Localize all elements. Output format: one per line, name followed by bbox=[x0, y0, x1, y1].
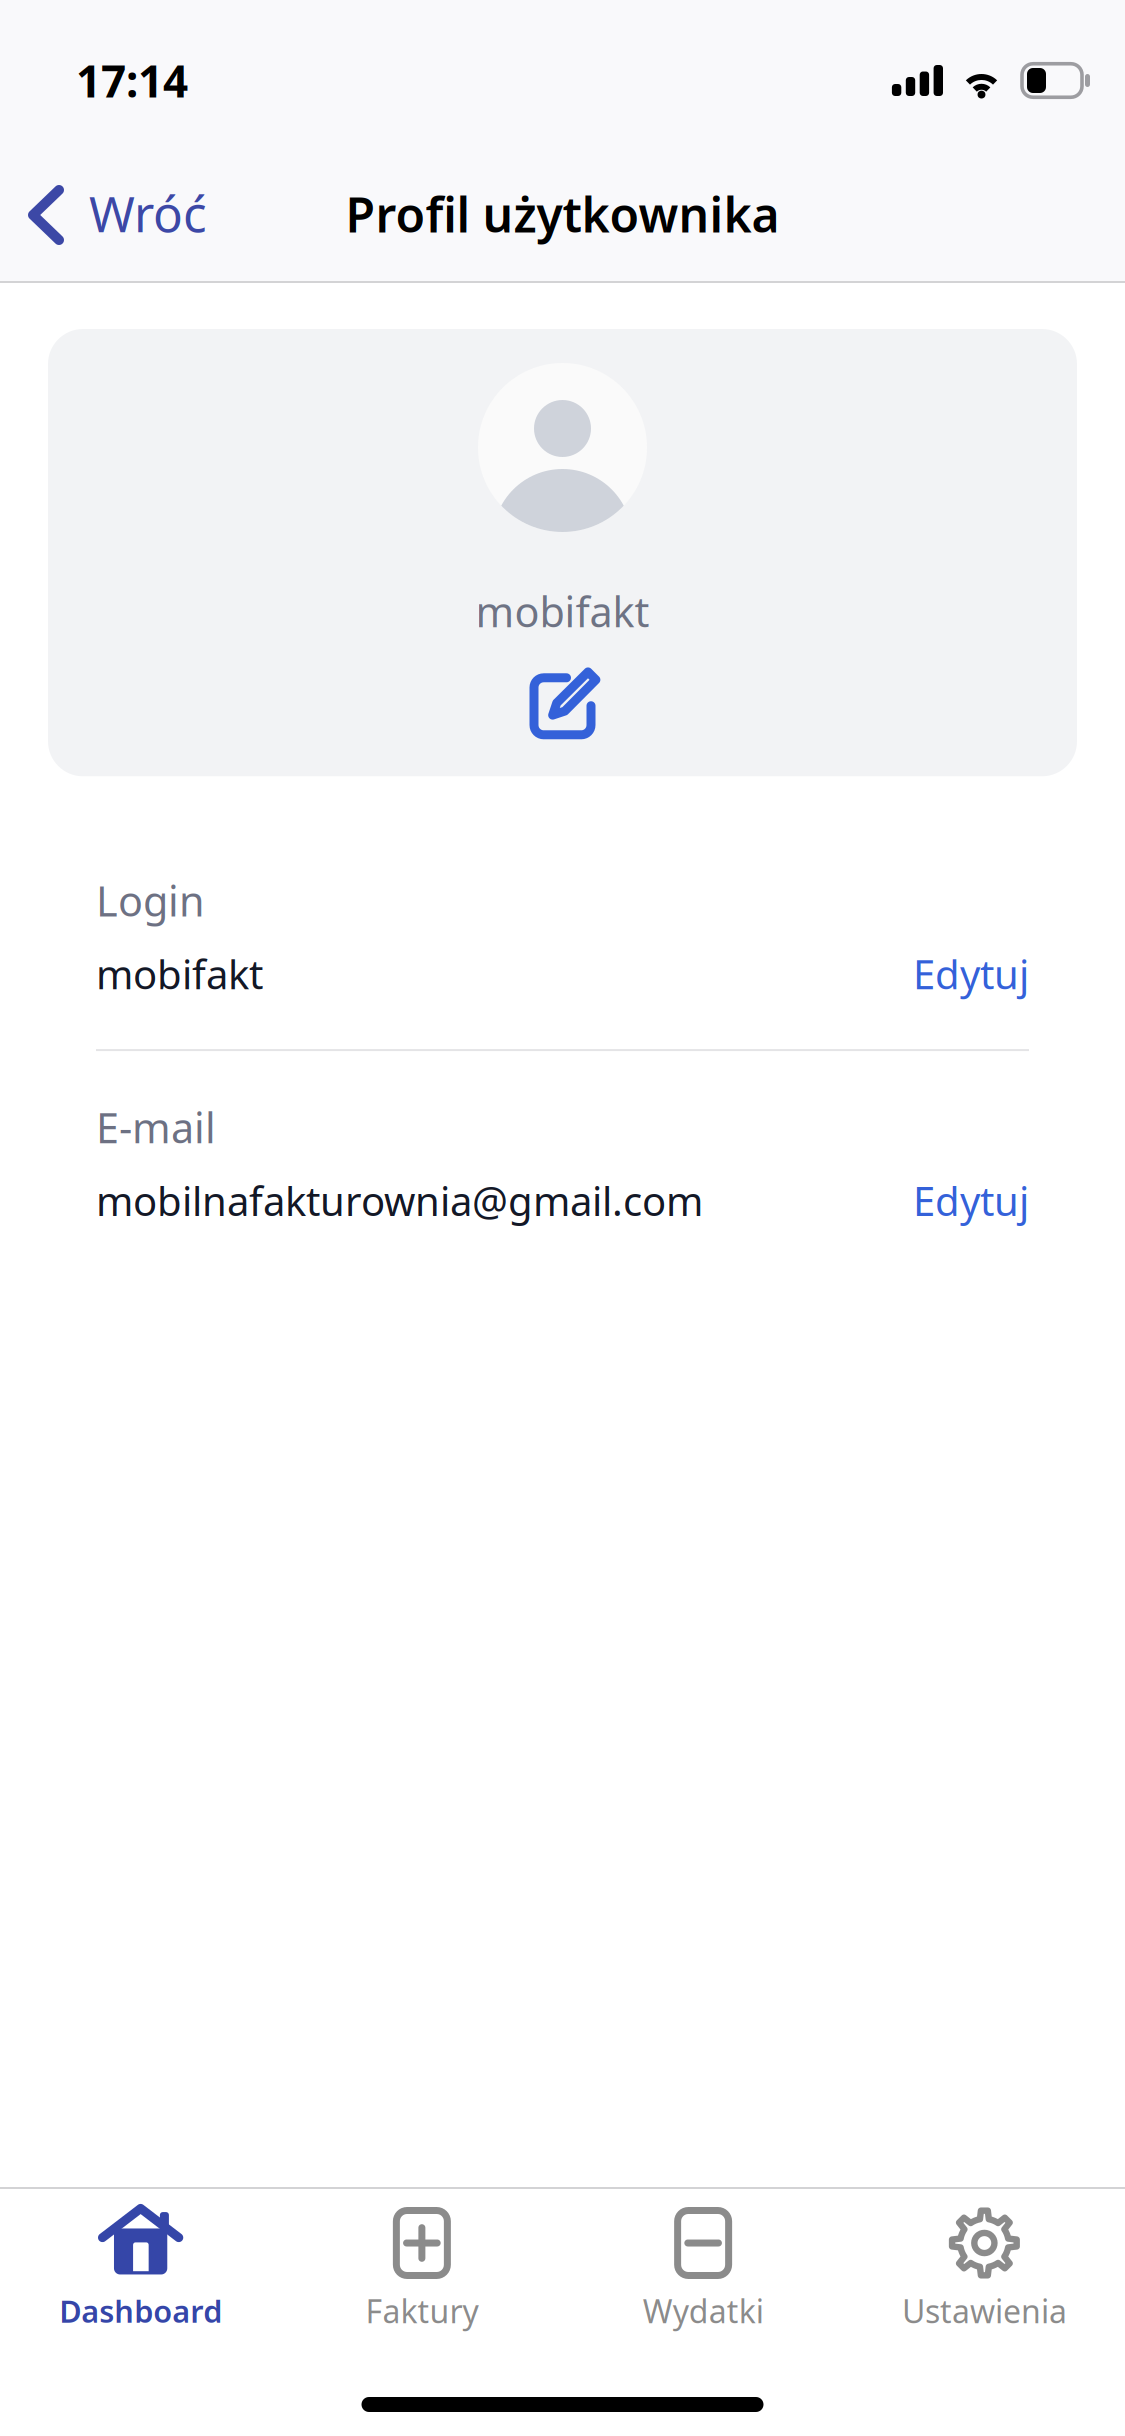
staticText: Wydatki bbox=[643, 2289, 764, 2333]
staticText: Ustawienia bbox=[902, 2289, 1067, 2333]
staticText: Wróć bbox=[89, 179, 207, 247]
button[interactable]: Edytuj bbox=[913, 1173, 1029, 1228]
button[interactable]: Edytuj bbox=[913, 947, 1029, 1001]
staticText: mobifakt bbox=[475, 583, 649, 639]
button[interactable]: Wydatki bbox=[562, 2202, 844, 2333]
staticText: Faktury bbox=[365, 2289, 478, 2333]
staticText: mobilnafakturownia@gmail.com bbox=[96, 1173, 703, 1228]
staticText: Login bbox=[96, 872, 205, 929]
button[interactable]: Edytuj nazwę użytkownika bbox=[519, 655, 605, 743]
staticText: 17:14 bbox=[76, 50, 188, 110]
staticText: Profil użytkownika bbox=[345, 181, 779, 247]
staticText: Edytuj bbox=[913, 947, 1029, 1001]
button[interactable]: Ustawienia bbox=[844, 2202, 1125, 2333]
button[interactable]: Wróć bbox=[9, 165, 231, 269]
staticText: Edytuj bbox=[913, 1173, 1029, 1228]
button[interactable]: Faktury bbox=[281, 2202, 562, 2333]
staticText: E-mail bbox=[96, 1099, 216, 1155]
staticText: mobifakt bbox=[96, 947, 263, 1001]
button[interactable]: Dashboard bbox=[0, 2203, 281, 2332]
staticText: Dashboard bbox=[59, 2290, 222, 2332]
